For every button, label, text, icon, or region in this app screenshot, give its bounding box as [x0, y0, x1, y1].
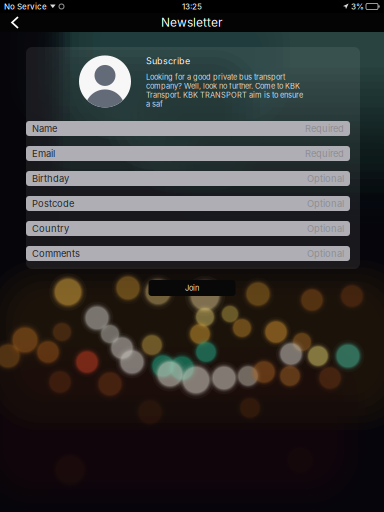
button[interactable]: Back — [0, 13, 30, 32]
button[interactable]: Name — [26, 121, 350, 136]
staticText: 3% — [351, 2, 364, 11]
staticText: Required — [305, 123, 344, 134]
staticText: Postcode — [32, 198, 74, 209]
staticText: Looking for a good private bus transport… — [146, 72, 303, 108]
staticText: Name — [32, 123, 57, 134]
staticText: No Service — [4, 2, 47, 11]
button[interactable]: Join — [148, 280, 235, 296]
staticText: Birthday — [32, 173, 69, 184]
button[interactable]: Birthday — [26, 171, 350, 186]
button[interactable]: Country — [26, 221, 350, 236]
staticText: 13:25 — [182, 2, 202, 11]
button[interactable]: Postcode — [26, 196, 350, 211]
staticText: Email — [32, 148, 55, 159]
staticText: Newsletter — [161, 15, 223, 30]
button[interactable]: Comments — [26, 246, 350, 261]
staticText: Required — [305, 148, 344, 159]
staticText: Optional — [307, 198, 344, 209]
staticText: Country — [32, 223, 69, 234]
staticText: Optional — [307, 223, 344, 234]
staticText: Subscribe — [146, 55, 190, 66]
staticText: Optional — [307, 248, 344, 259]
staticText: Join — [185, 283, 199, 292]
staticText: Comments — [32, 248, 80, 259]
button[interactable]: Email — [26, 146, 350, 161]
staticText: Optional — [307, 173, 344, 184]
